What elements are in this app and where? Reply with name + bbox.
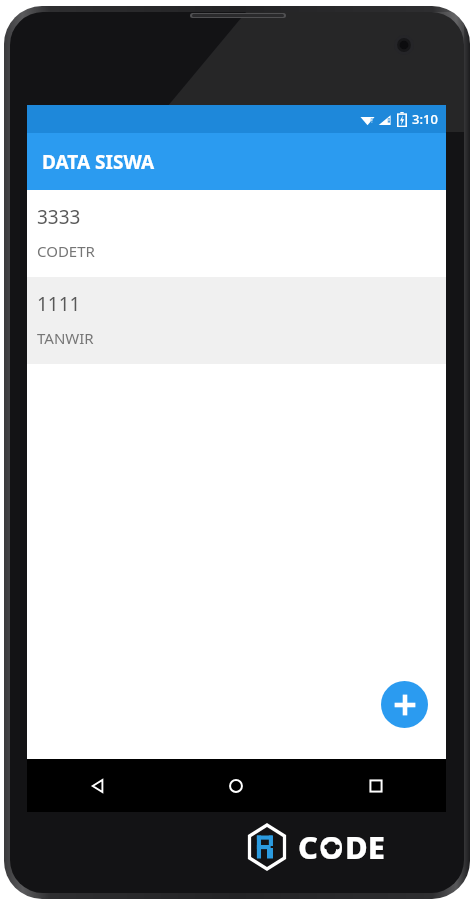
- button[interactable]: 1111: [27, 277, 446, 364]
- button[interactable]: Add: [381, 681, 428, 728]
- button[interactable]: Home: [166, 759, 306, 812]
- button[interactable]: 3333: [27, 190, 446, 277]
- staticText: CODETR: [37, 241, 95, 261]
- staticText: C: [298, 826, 318, 868]
- button[interactable]: Recents: [306, 759, 446, 812]
- button[interactable]: Back: [27, 759, 166, 812]
- staticText: 3333: [37, 204, 81, 230]
- staticText: TANWIR: [37, 328, 94, 348]
- staticText: DATA SISWA: [42, 149, 155, 175]
- staticText: O: [319, 826, 344, 868]
- staticText: 3:10: [412, 110, 438, 128]
- staticText: DE: [345, 826, 385, 868]
- staticText: 1111: [37, 291, 81, 317]
